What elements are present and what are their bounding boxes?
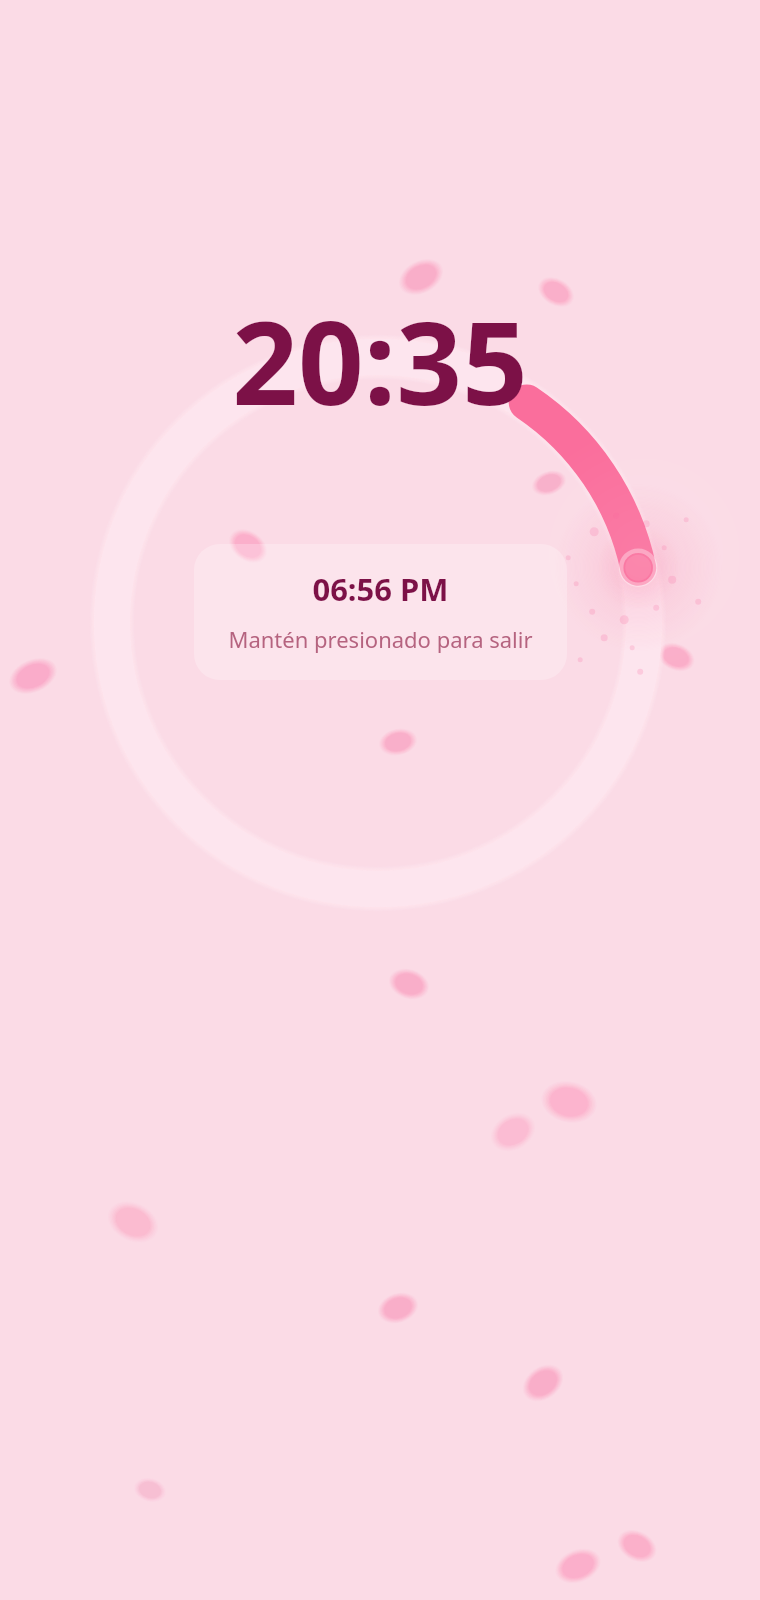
staticText: 20:35: [232, 282, 528, 439]
staticText: Mantén presionado para salir: [228, 624, 533, 654]
staticText: 06:56 PM: [312, 568, 449, 610]
button[interactable]: Tiempo restante 20:35: [232, 282, 528, 439]
button[interactable]: 06:56 PM: [194, 544, 567, 680]
